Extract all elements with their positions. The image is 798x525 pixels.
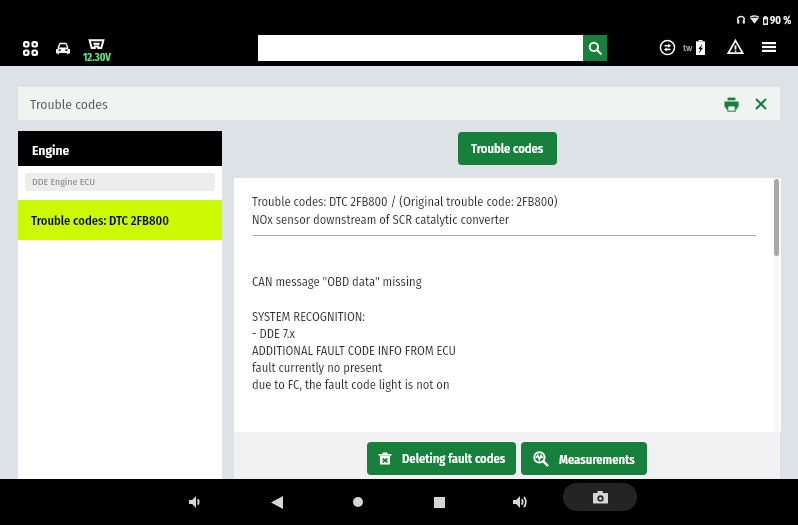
staticText: DDE Engine ECU xyxy=(32,176,96,188)
button[interactable]: Battery voltage xyxy=(79,31,114,65)
button[interactable]: Warnings xyxy=(721,33,749,61)
staticText: Deleting fault codes xyxy=(402,451,506,466)
staticText: CAN message "OBD data" missing xyxy=(252,274,422,289)
button[interactable]: Trouble codes xyxy=(458,132,557,165)
button[interactable]: Measurements xyxy=(521,442,647,475)
staticText: fault currently no present xyxy=(252,360,383,375)
button[interactable]: Close xyxy=(747,90,775,118)
staticText: - DDE 7.x xyxy=(252,326,295,341)
staticText: tw xyxy=(683,42,693,53)
staticText: Trouble codes: DTC 2FB800 xyxy=(31,213,169,228)
button[interactable]: Deleting fault codes xyxy=(367,442,516,475)
button[interactable]: Search xyxy=(583,35,607,61)
button[interactable]: Trouble codes: DTC 2FB800 xyxy=(18,200,222,240)
staticText: due to FC, the fault code light is not o… xyxy=(252,377,450,392)
staticText: Trouble codes: DTC 2FB800 / (Original tr… xyxy=(252,194,558,209)
staticText: Trouble codes xyxy=(30,96,108,112)
staticText: Trouble codes xyxy=(471,141,544,156)
button[interactable]: Back xyxy=(259,479,295,525)
button[interactable]: Volume up xyxy=(502,479,538,525)
button[interactable]: Screenshot xyxy=(563,483,637,511)
button[interactable]: DDE Engine ECU xyxy=(25,173,215,191)
button[interactable]: Menu xyxy=(755,33,783,61)
button[interactable]: Volume down xyxy=(178,479,214,525)
button[interactable]: Print xyxy=(715,88,747,120)
button[interactable]: Connection status xyxy=(653,33,681,61)
button[interactable]: Vehicle xyxy=(46,31,80,65)
button[interactable]: Apps xyxy=(13,31,47,65)
staticText: Measurements xyxy=(559,452,635,467)
button[interactable]: Home xyxy=(340,479,376,525)
staticText: 12.30V xyxy=(83,51,111,64)
staticText: Engine xyxy=(32,142,70,158)
staticText: 90 % xyxy=(770,14,792,27)
button[interactable]: Recent apps xyxy=(421,479,457,525)
staticText: NOx sensor downstream of SCR catalytic c… xyxy=(252,212,510,227)
staticText: SYSTEM RECOGNITION: xyxy=(252,309,365,324)
staticText: ADDITIONAL FAULT CODE INFO FROM ECU xyxy=(252,343,456,358)
button[interactable]: Engine xyxy=(18,131,222,166)
